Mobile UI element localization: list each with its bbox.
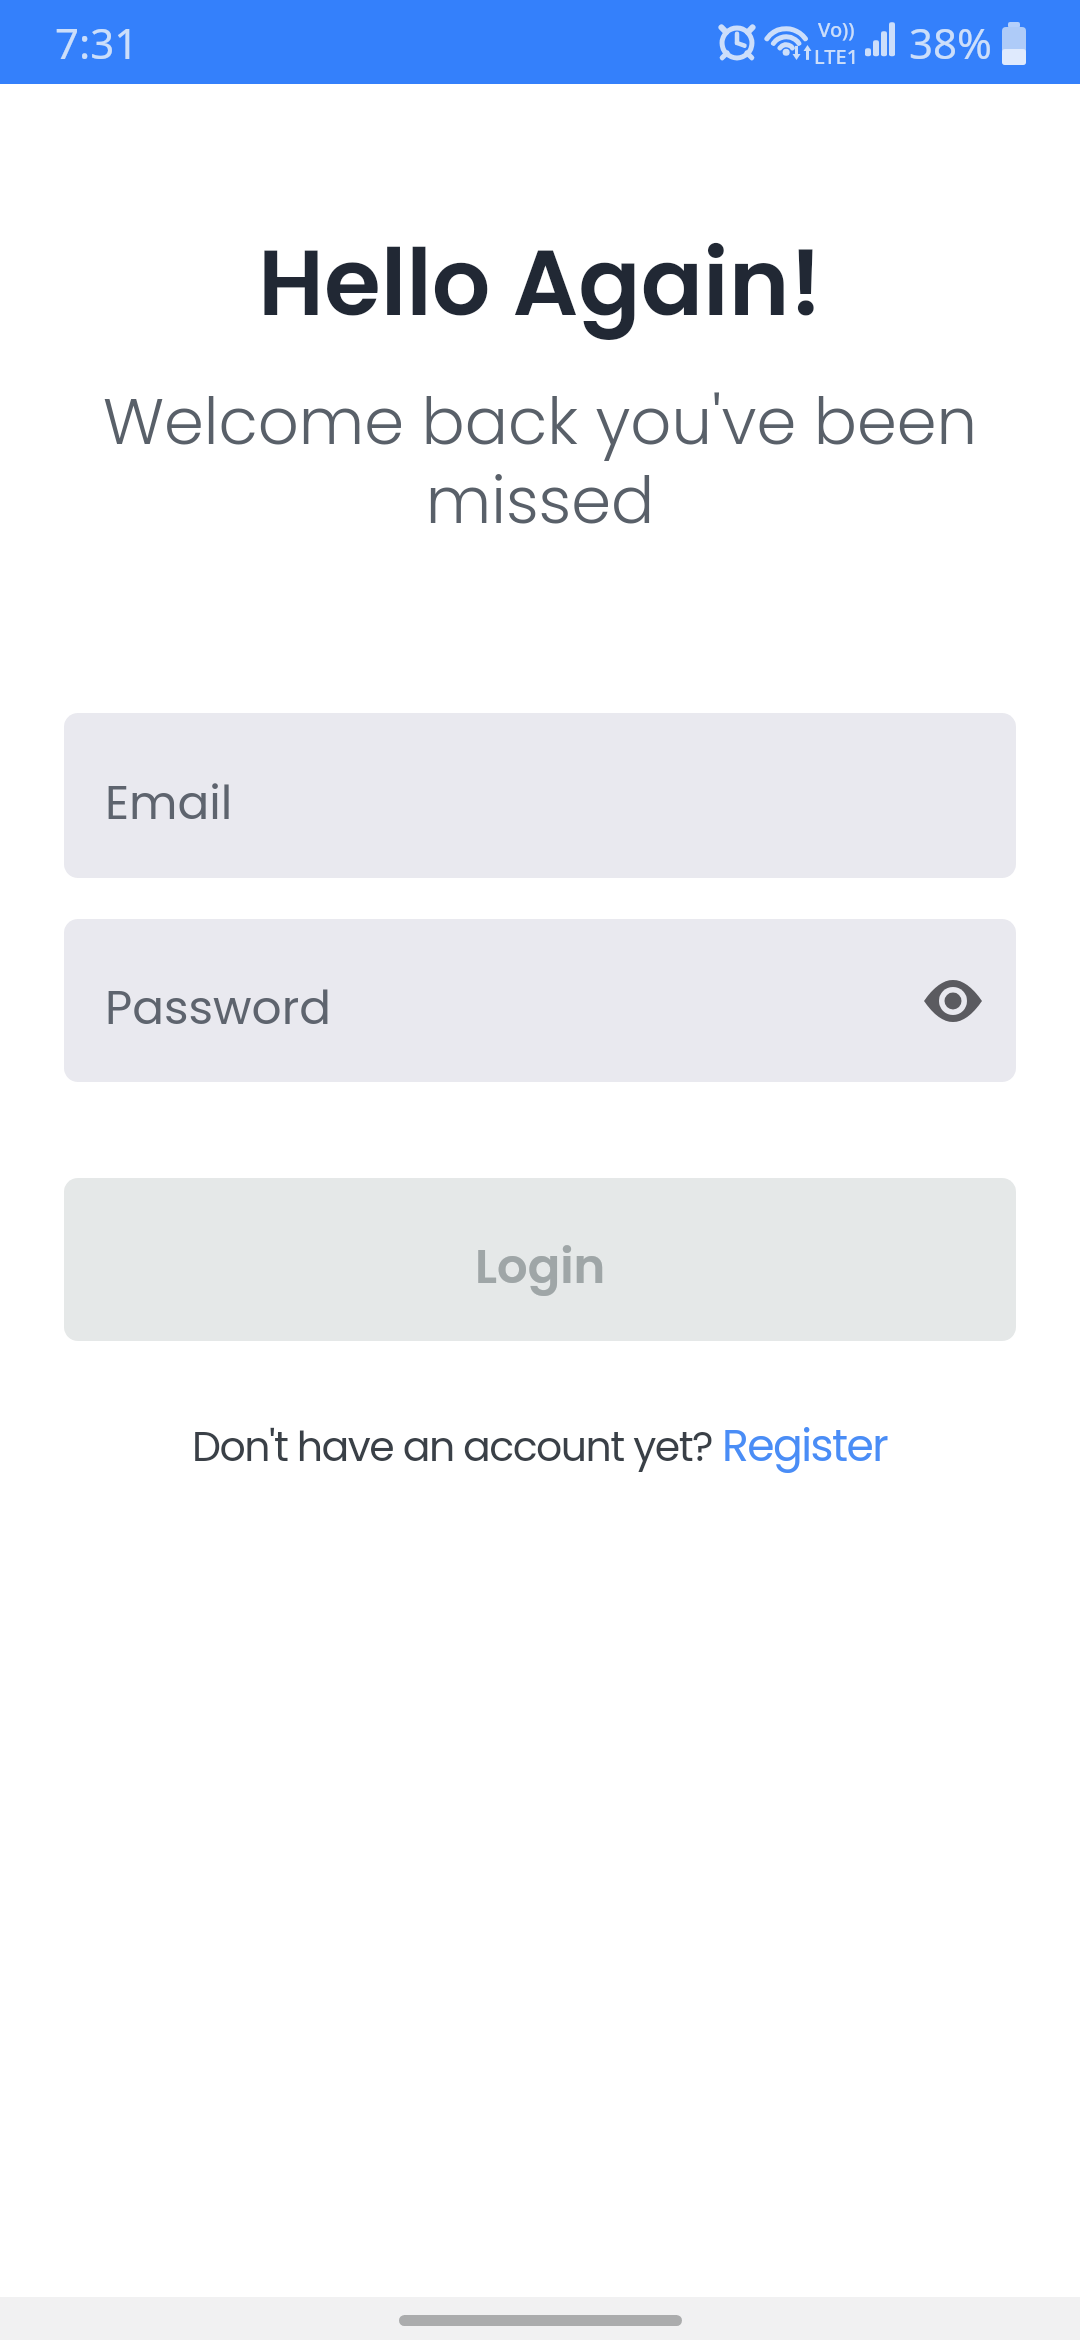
staticText: Vo)) xyxy=(818,16,855,43)
button[interactable]: Login xyxy=(64,1178,1016,1341)
staticText: Welcome back you've been missed xyxy=(0,377,1080,545)
button[interactable]: Email xyxy=(64,713,1016,878)
staticText: 38% xyxy=(909,14,992,71)
button[interactable] xyxy=(924,980,982,1022)
button[interactable]: Register xyxy=(722,1415,888,1477)
staticText: Login xyxy=(475,1233,606,1300)
staticText: 7:31 xyxy=(55,14,139,71)
staticText: LTE1 xyxy=(814,43,859,70)
button[interactable]: Password xyxy=(64,919,1016,1082)
staticText: Hello Again! xyxy=(0,218,1080,347)
staticText: Password xyxy=(105,975,331,1041)
staticText: Register xyxy=(722,1415,888,1477)
staticText: Don't have an account yet? xyxy=(192,1418,722,1475)
staticText: Email xyxy=(105,770,233,836)
